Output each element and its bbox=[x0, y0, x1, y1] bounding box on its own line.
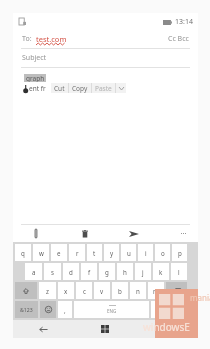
button[interactable]: More bbox=[174, 225, 192, 242]
staticText: windowsE bbox=[143, 320, 190, 334]
staticText: b bbox=[118, 287, 122, 295]
staticText: graph bbox=[26, 74, 45, 82]
button[interactable]: h bbox=[117, 263, 133, 280]
button[interactable]: Attach bbox=[27, 225, 45, 242]
button[interactable]: d bbox=[63, 263, 79, 280]
staticText: i bbox=[145, 249, 147, 257]
staticText: Cut bbox=[54, 84, 65, 93]
staticText: w bbox=[39, 249, 44, 257]
button[interactable]: o bbox=[155, 244, 170, 261]
staticText: To: bbox=[22, 34, 32, 44]
button[interactable]: Back bbox=[13, 320, 74, 338]
staticText: l bbox=[178, 268, 180, 276]
button[interactable]: x bbox=[58, 282, 74, 299]
staticText: r bbox=[76, 249, 79, 257]
staticText: z bbox=[46, 287, 49, 295]
button[interactable]: Delete bbox=[76, 225, 94, 242]
staticText: d bbox=[69, 268, 73, 276]
staticText: y bbox=[110, 249, 114, 257]
staticText: h bbox=[123, 268, 127, 276]
staticText: a bbox=[32, 268, 36, 276]
button[interactable]: Subject bbox=[13, 49, 198, 67]
button[interactable]: To: bbox=[13, 30, 198, 48]
button[interactable]: y bbox=[104, 244, 119, 261]
staticText: x bbox=[64, 287, 68, 295]
button[interactable]: r bbox=[69, 244, 85, 261]
button[interactable]: , bbox=[58, 301, 72, 318]
button[interactable]: ENG bbox=[74, 301, 149, 318]
button[interactable]: j bbox=[135, 263, 151, 280]
button[interactable]: Backspace bbox=[166, 282, 187, 299]
staticText: j bbox=[142, 268, 144, 276]
button[interactable]: l bbox=[171, 263, 187, 280]
button[interactable]: More options bbox=[116, 83, 126, 93]
button[interactable]: e bbox=[51, 244, 67, 261]
button[interactable]: Start bbox=[74, 320, 136, 338]
button[interactable]: Copy bbox=[69, 83, 91, 93]
button[interactable]: Enter bbox=[167, 301, 187, 318]
staticText: Copy bbox=[72, 84, 88, 93]
button[interactable]: t bbox=[87, 244, 102, 261]
staticText: ent fr bbox=[29, 84, 46, 93]
staticText: f bbox=[88, 268, 91, 276]
staticText: ENG bbox=[107, 308, 117, 314]
staticText: c bbox=[83, 287, 86, 295]
staticText: p bbox=[178, 249, 182, 257]
button[interactable]: Search bbox=[136, 320, 198, 338]
staticText: Paste bbox=[95, 84, 112, 93]
button[interactable]: p bbox=[172, 244, 187, 261]
button[interactable]: k bbox=[153, 263, 169, 280]
staticText: Cc Bcc bbox=[168, 34, 189, 44]
button[interactable]: u bbox=[121, 244, 136, 261]
button[interactable]: z bbox=[39, 282, 56, 299]
button[interactable]: n bbox=[130, 282, 146, 299]
button[interactable]: m bbox=[148, 282, 164, 299]
staticText: e bbox=[57, 249, 61, 257]
staticText: n bbox=[136, 287, 140, 295]
button[interactable]: w bbox=[33, 244, 49, 261]
button[interactable]: Shift bbox=[15, 282, 37, 299]
staticText: q bbox=[21, 249, 25, 257]
staticText: v bbox=[100, 287, 104, 295]
staticText: o bbox=[161, 249, 165, 257]
button[interactable]: Paste bbox=[92, 83, 115, 93]
button[interactable]: c bbox=[76, 282, 92, 299]
staticText: &123 bbox=[20, 306, 33, 313]
button[interactable]: a bbox=[25, 263, 42, 280]
button[interactable]: Send bbox=[124, 225, 144, 242]
staticText: 13:14 bbox=[175, 17, 193, 27]
staticText: mania.pl bbox=[190, 292, 210, 303]
button[interactable]: Emoji bbox=[40, 301, 56, 318]
button[interactable]: . bbox=[151, 301, 165, 318]
staticText: Subject bbox=[22, 53, 47, 63]
button[interactable]: i bbox=[138, 244, 153, 261]
button[interactable]: q bbox=[15, 244, 31, 261]
button[interactable]: s bbox=[44, 263, 61, 280]
staticText: test.com bbox=[36, 34, 67, 44]
staticText: , bbox=[64, 306, 66, 314]
staticText: s bbox=[51, 268, 54, 276]
staticText: t bbox=[93, 249, 96, 257]
staticText: k bbox=[159, 268, 163, 276]
staticText: g bbox=[105, 268, 109, 276]
button[interactable]: Cut bbox=[51, 83, 68, 93]
button[interactable]: v bbox=[94, 282, 110, 299]
staticText: u bbox=[127, 249, 131, 257]
button[interactable]: g bbox=[99, 263, 115, 280]
button[interactable]: b bbox=[112, 282, 128, 299]
button[interactable]: f bbox=[81, 263, 97, 280]
staticText: m bbox=[153, 287, 159, 295]
button[interactable]: Numbers and symbols bbox=[15, 301, 38, 318]
